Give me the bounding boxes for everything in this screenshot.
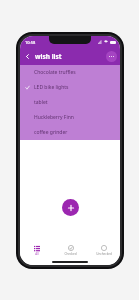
button[interactable]: Huckleberry Finn (20, 110, 120, 125)
staticText: All (35, 252, 39, 256)
button[interactable]: All (20, 242, 54, 259)
button[interactable]: Checked (54, 242, 87, 259)
button[interactable]: More options (106, 51, 117, 62)
staticText: wish list (35, 52, 62, 61)
staticText: Chocolate truffles (34, 69, 76, 76)
button[interactable]: Unchecked (87, 242, 120, 259)
button[interactable]: Chocolate truffles (20, 65, 120, 80)
staticText: Huckleberry Finn (34, 114, 74, 121)
button[interactable]: LED bike lights (20, 80, 120, 95)
button[interactable]: tablet (20, 95, 120, 110)
button[interactable]: Add item (62, 199, 79, 216)
staticText: Unchecked (96, 252, 112, 256)
button[interactable]: Back (22, 51, 33, 62)
staticText: coffee grinder (34, 129, 68, 136)
staticText: Checked (64, 252, 77, 256)
button[interactable]: coffee grinder (20, 125, 120, 140)
staticText: LED bike lights (34, 84, 69, 91)
staticText: tablet (34, 99, 48, 106)
staticText: 10:58 (25, 40, 36, 45)
